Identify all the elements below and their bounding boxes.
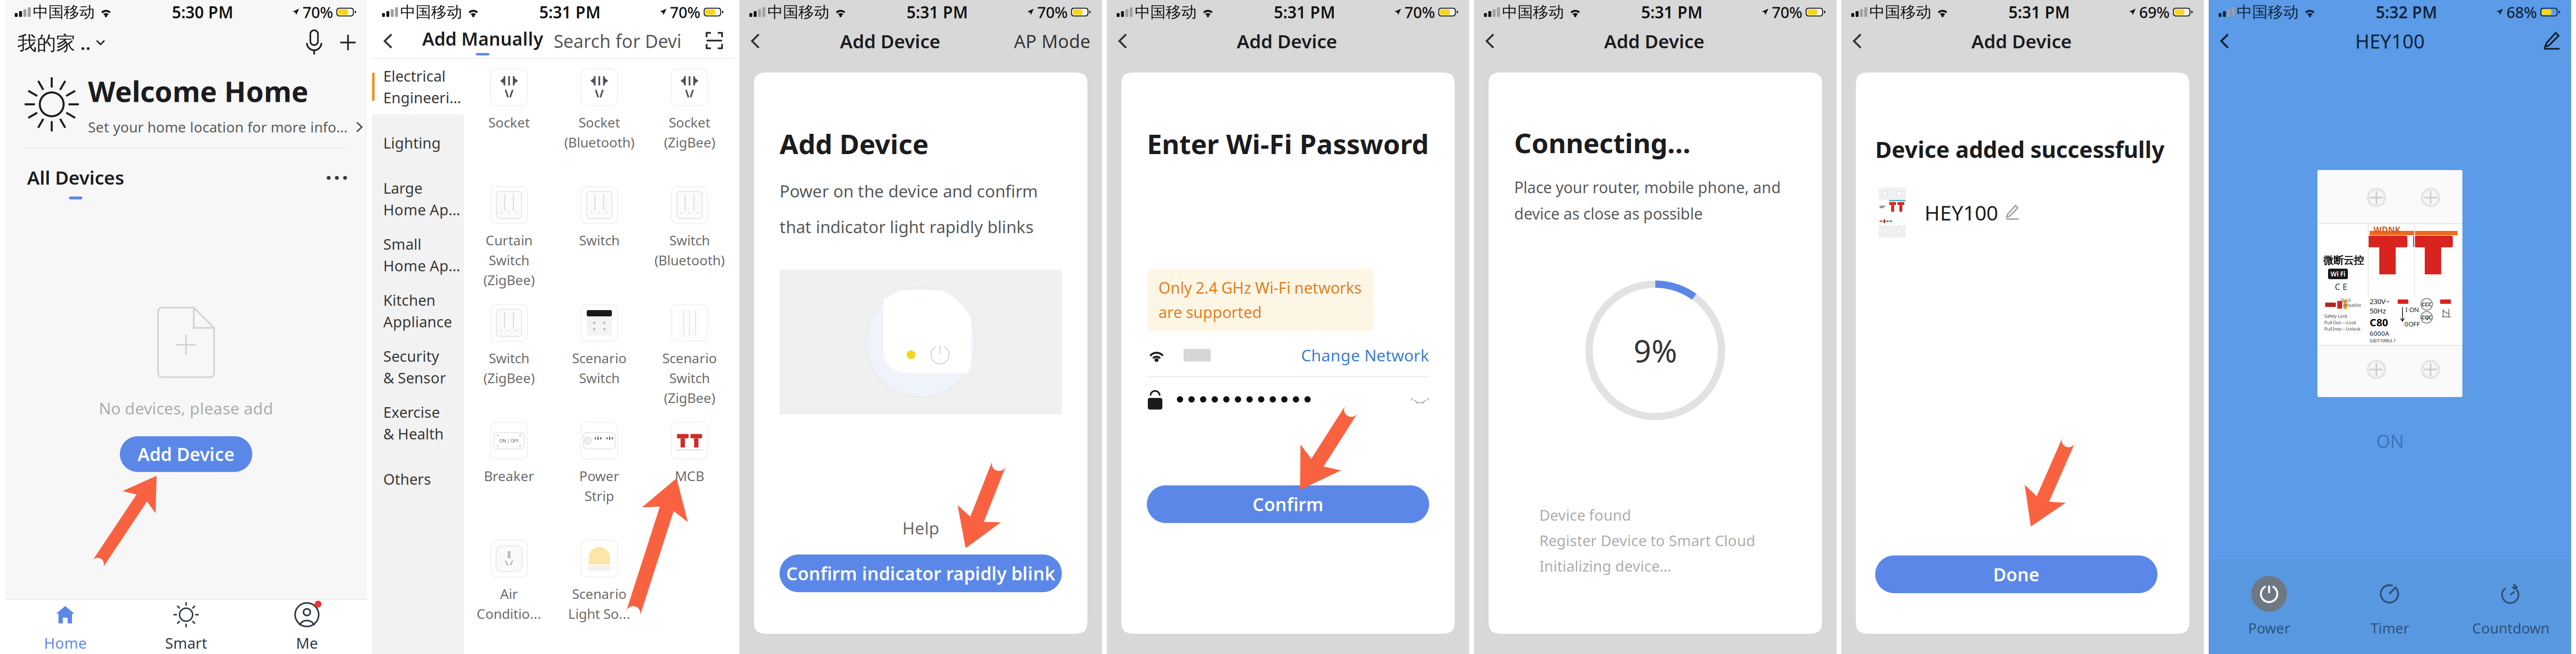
button[interactable]: Lighting xyxy=(372,115,464,171)
button[interactable]: Back xyxy=(372,28,398,54)
staticText: GB/T10963.1 xyxy=(2370,338,2396,344)
staticText: 50Hz xyxy=(2370,306,2386,315)
staticText: Add Device xyxy=(1971,29,2072,53)
button[interactable]: Back xyxy=(2209,28,2236,54)
staticText: Power xyxy=(579,467,619,485)
staticText: Socket xyxy=(488,113,530,131)
staticText: Enter Wi-Fi Password xyxy=(1147,126,1429,162)
staticText: & Sensor xyxy=(383,368,446,387)
button[interactable]: Socket xyxy=(556,53,643,182)
button[interactable]: Confirm xyxy=(1147,485,1429,523)
staticText: Light So... xyxy=(568,605,630,623)
staticText: 70% xyxy=(1772,2,1802,22)
staticText: Quick xyxy=(2341,298,2351,303)
button[interactable]: Air xyxy=(466,525,553,653)
button[interactable]: Confirm indicator rapidly blink xyxy=(780,554,1062,592)
button[interactable]: All Devices xyxy=(24,165,127,199)
button[interactable]: AP Mode xyxy=(1014,24,1102,58)
staticText: Connecting... xyxy=(1514,125,1691,161)
button[interactable]: Search for Devi xyxy=(543,29,682,53)
staticText: Small xyxy=(383,234,421,254)
staticText: 中国移动 xyxy=(2237,3,2299,22)
button[interactable]: Voice xyxy=(302,30,327,55)
button[interactable]: Done xyxy=(1875,555,2157,593)
button[interactable]: Change Network xyxy=(1301,344,1429,366)
button[interactable]: Scenario xyxy=(556,525,643,653)
staticText: 5:30 PM xyxy=(172,1,233,23)
button[interactable]: Switch xyxy=(556,171,643,300)
staticText: Smart xyxy=(165,633,207,653)
staticText: Wi Fi xyxy=(2330,270,2345,278)
button[interactable]: Rename xyxy=(1998,205,2019,220)
staticText: Help xyxy=(902,517,939,539)
staticText: Device added successfully xyxy=(1875,134,2165,164)
staticText: 5:31 PM xyxy=(2009,1,2070,23)
staticText: MCB xyxy=(675,467,704,485)
button[interactable]: Add Device xyxy=(120,436,252,472)
button[interactable]: Back xyxy=(1107,28,1134,54)
staticText: Security xyxy=(383,346,439,366)
staticText: 5:32 PM xyxy=(2376,1,2437,23)
staticText: Add Device xyxy=(1604,29,1705,53)
staticText: C E xyxy=(2335,281,2347,292)
button[interactable]: Welcome Home xyxy=(5,61,367,148)
staticText: 69% xyxy=(2139,2,2170,22)
button[interactable]: Home xyxy=(5,600,126,654)
staticText: ON | OFF xyxy=(499,438,519,444)
button[interactable]: Electrical xyxy=(372,59,464,115)
button[interactable]: Back xyxy=(1841,28,1868,54)
button[interactable]: Scan xyxy=(706,32,735,50)
button[interactable]: Power xyxy=(2209,567,2330,646)
staticText: Confirm indicator rapidly blink xyxy=(786,561,1055,585)
button[interactable]: Scenario xyxy=(556,289,643,418)
staticText: Home xyxy=(44,633,87,653)
button[interactable]: ON | OFF xyxy=(466,407,553,535)
button[interactable]: Exercise xyxy=(372,395,464,451)
button[interactable]: Switch xyxy=(466,289,553,418)
button[interactable]: Kitchen xyxy=(372,283,464,339)
staticText: 微断云控 xyxy=(2323,254,2364,267)
button[interactable]: Power xyxy=(556,407,643,535)
button[interactable]: MCB xyxy=(646,407,733,535)
button[interactable]: Show password xyxy=(1411,394,1429,405)
staticText: Others xyxy=(383,469,431,489)
staticText: C80 xyxy=(2370,315,2388,329)
staticText: Search for Devi xyxy=(554,29,682,53)
button[interactable]: Smart xyxy=(126,600,246,654)
staticText: 70% xyxy=(670,2,700,22)
staticText: Breaker xyxy=(484,467,534,485)
staticText: Switch xyxy=(669,231,710,249)
staticText: 5:31 PM xyxy=(539,1,601,23)
button[interactable]: Switch xyxy=(646,171,733,300)
button[interactable]: Small xyxy=(372,227,464,283)
staticText: HEY100 xyxy=(1925,199,1998,226)
button[interactable]: Add Manually xyxy=(422,29,543,53)
button[interactable]: Security xyxy=(372,339,464,395)
button[interactable]: Others xyxy=(372,451,464,507)
button[interactable]: Curtain xyxy=(466,171,553,300)
staticText: 5:31 PM xyxy=(907,1,968,23)
staticText: 中国移动 xyxy=(767,3,829,22)
staticText: 5:31 PM xyxy=(1274,1,1335,23)
staticText: that indicator light rapidly blinks xyxy=(780,216,1034,238)
button[interactable]: More xyxy=(320,169,354,195)
staticText: Lighting xyxy=(383,133,441,153)
staticText: Kitchen xyxy=(383,290,435,310)
staticText: (ZigBee) xyxy=(483,271,535,289)
staticText: are supported xyxy=(1158,302,1262,322)
staticText: (Bluetooth) xyxy=(564,133,634,151)
button[interactable]: Timer xyxy=(2330,567,2450,646)
button[interactable]: Large xyxy=(372,171,464,227)
button[interactable]: Me xyxy=(246,600,367,654)
staticText: 230V~ xyxy=(2370,297,2389,306)
button[interactable]: Add xyxy=(327,34,367,51)
button[interactable]: Socket xyxy=(466,53,553,182)
button[interactable]: Edit xyxy=(2544,32,2571,50)
button[interactable]: Back xyxy=(739,28,767,54)
button[interactable]: Back xyxy=(1474,28,1501,54)
button[interactable]: Scenario xyxy=(646,289,733,418)
button[interactable]: 我的家 .. xyxy=(5,26,105,59)
staticText: Scenario xyxy=(572,349,627,367)
button[interactable]: Countdown xyxy=(2450,567,2571,646)
button[interactable]: Socket xyxy=(646,53,733,182)
